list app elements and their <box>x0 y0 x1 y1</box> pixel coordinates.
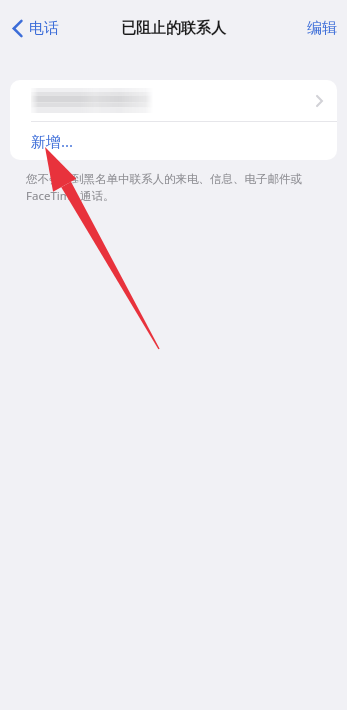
button[interactable]: 编辑 <box>303 13 341 44</box>
staticText: 您不会收到黑名单中联系人的来电、信息、电子邮件或 FaceTime 通话。 <box>26 171 325 203</box>
staticText: 编辑 <box>307 19 337 38</box>
staticText: 已阻止的联系人 <box>121 19 226 38</box>
staticText: 电话 <box>29 19 59 38</box>
staticText: 新增... <box>31 131 74 151</box>
other: Show contact details <box>316 95 323 107</box>
button[interactable]: 新增... <box>10 122 337 160</box>
button[interactable]: Show contact details <box>10 80 337 121</box>
button[interactable]: 电话 <box>8 13 63 44</box>
